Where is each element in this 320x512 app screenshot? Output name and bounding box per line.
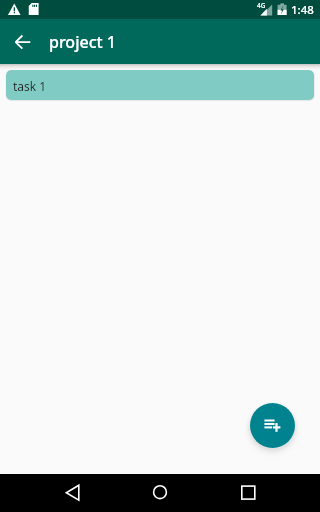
staticText: project 1 <box>49 31 116 53</box>
button[interactable]: Home <box>141 474 179 512</box>
staticText: task 1 <box>13 78 47 94</box>
button[interactable]: Add task <box>250 403 295 448</box>
staticText: 1:48 <box>291 2 314 18</box>
button[interactable]: Recent apps <box>229 474 267 512</box>
button[interactable]: Back <box>53 474 91 512</box>
button[interactable]: Navigate up <box>0 19 45 64</box>
staticText: 4G <box>257 1 266 10</box>
button[interactable]: task 1 <box>6 70 314 100</box>
